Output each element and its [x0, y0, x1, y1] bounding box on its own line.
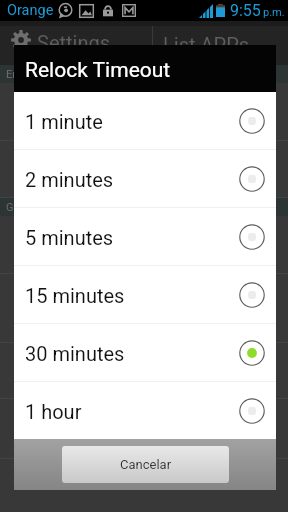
- staticText: Settings: [37, 31, 111, 54]
- staticText: 9:55: [230, 1, 261, 20]
- staticText: 1 hour: [25, 400, 239, 423]
- button[interactable]: 2 minutes: [14, 150, 276, 207]
- staticText: Orange: [7, 2, 54, 19]
- button[interactable]: 1 minute: [14, 92, 276, 149]
- staticText: p.m.: [263, 6, 285, 19]
- staticText: 5 minutes: [25, 226, 239, 249]
- button[interactable]: 5 minutes: [14, 208, 276, 265]
- staticText: 30 minutes: [25, 342, 239, 365]
- staticText: List APPs: [163, 33, 250, 56]
- button[interactable]: 1 hour: [14, 382, 276, 439]
- staticText: 1 minute: [25, 110, 239, 133]
- button[interactable]: Cancelar: [62, 446, 229, 483]
- button[interactable]: 15 minutes: [14, 266, 276, 323]
- staticText: Relock Timeout: [25, 58, 171, 83]
- staticText: General: [6, 201, 44, 214]
- staticText: Encryption: [6, 68, 58, 81]
- button[interactable]: 30 minutes: [14, 324, 276, 381]
- staticText: 15 minutes: [25, 284, 239, 307]
- staticText: Cancelar: [120, 457, 172, 472]
- staticText: 2 minutes: [25, 168, 239, 191]
